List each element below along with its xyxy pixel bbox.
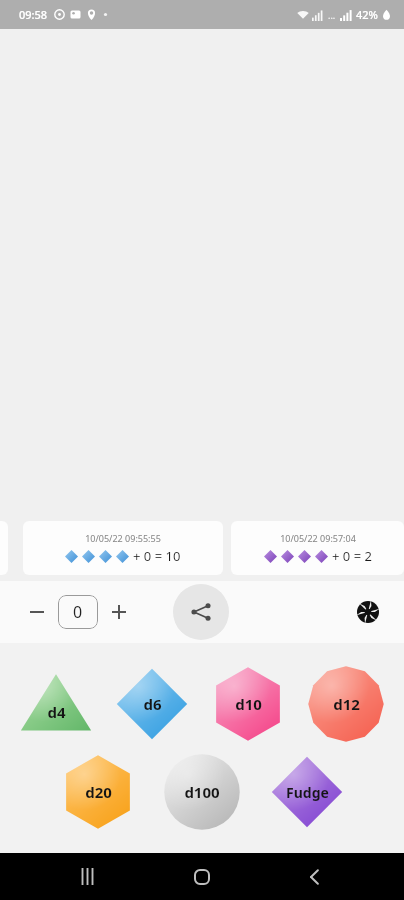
staticText: 10/05/22 09:55:55 [85, 532, 161, 544]
button[interactable]: Recents [65, 853, 113, 900]
staticText: d20 [85, 782, 112, 802]
button[interactable]: 10/05/22 09:55:55 [23, 521, 223, 575]
button[interactable]: Decrease [22, 597, 52, 627]
staticText: 0 [73, 601, 83, 623]
button[interactable]: Fudge [267, 752, 347, 832]
button[interactable]: Home [178, 853, 226, 900]
staticText: + 0 = 10 [133, 547, 181, 565]
staticText: d6 [143, 694, 162, 714]
other: Decrease [29, 604, 45, 620]
staticText: d12 [333, 694, 360, 714]
button[interactable]: d12 [305, 663, 387, 745]
button[interactable]: Back [291, 853, 339, 900]
staticText: 10/05/22 09:57:04 [280, 532, 356, 544]
button[interactable]: Camera [348, 592, 388, 632]
button[interactable]: d100 [161, 751, 243, 833]
button[interactable]: Share [173, 584, 229, 640]
button[interactable]: d20 [58, 752, 138, 832]
button[interactable]: Increase [104, 597, 134, 627]
staticText: 42% [356, 7, 378, 22]
staticText: d4 [47, 702, 66, 722]
staticText: d100 [184, 782, 220, 802]
staticText: Fudge [286, 783, 329, 802]
staticText: + 0 = 2 [332, 547, 372, 565]
staticText: d10 [235, 694, 262, 714]
button[interactable]: d10 [208, 664, 288, 744]
other: Increase [111, 604, 127, 620]
staticText: 09:58 [19, 7, 48, 22]
staticText: ... [328, 9, 336, 21]
button[interactable]: d6 [112, 664, 192, 744]
button[interactable]: 0 [58, 595, 98, 629]
button[interactable]: 10/05/22 09:57:04 [231, 521, 404, 575]
button[interactable]: d4 [17, 665, 95, 743]
